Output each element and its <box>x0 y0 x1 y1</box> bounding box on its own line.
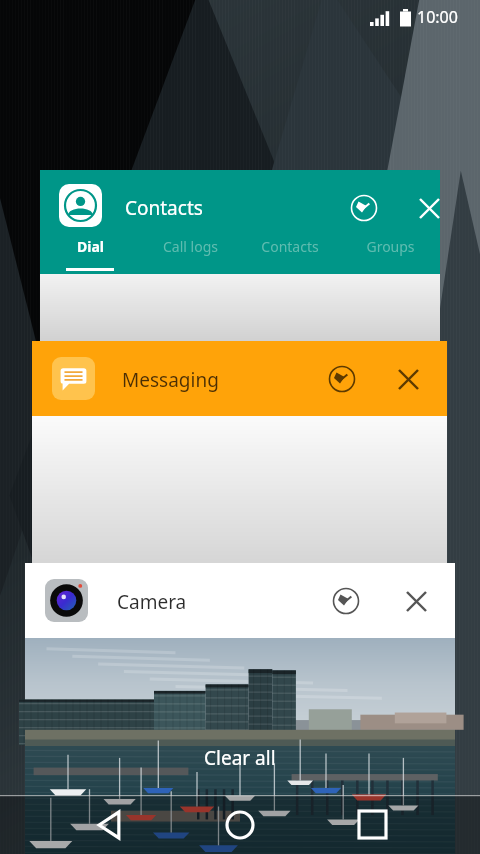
button[interactable]: Messaging <box>32 341 447 569</box>
staticText: Camera <box>117 589 187 615</box>
staticText: Contacts <box>125 195 203 221</box>
button[interactable]: Close app <box>402 587 430 615</box>
button[interactable]: Camera <box>25 563 455 854</box>
button[interactable]: Close app <box>394 365 422 393</box>
staticText: Contacts <box>261 237 319 256</box>
staticText: Call logs <box>163 237 218 256</box>
button[interactable]: Call logs <box>140 232 240 274</box>
button[interactable]: Pin app <box>350 194 378 222</box>
button[interactable]: Contacts <box>240 232 340 274</box>
staticText: 10:00 <box>417 6 458 28</box>
button[interactable]: Groups <box>340 232 440 274</box>
button[interactable]: Home <box>210 795 270 854</box>
staticText: Groups <box>366 237 415 256</box>
staticText: Clear all <box>204 745 276 771</box>
staticText: Messaging <box>122 367 219 393</box>
button[interactable]: Back <box>80 795 140 854</box>
staticText: Dial <box>77 237 104 256</box>
button[interactable]: Dial <box>40 232 140 274</box>
button[interactable]: Pin app <box>328 365 356 393</box>
button[interactable]: Clear all <box>170 740 310 776</box>
button[interactable]: Pin app <box>332 587 360 615</box>
button[interactable]: Contacts <box>40 170 440 345</box>
button[interactable]: Recent apps <box>342 795 402 854</box>
button[interactable]: Close app <box>415 194 443 222</box>
